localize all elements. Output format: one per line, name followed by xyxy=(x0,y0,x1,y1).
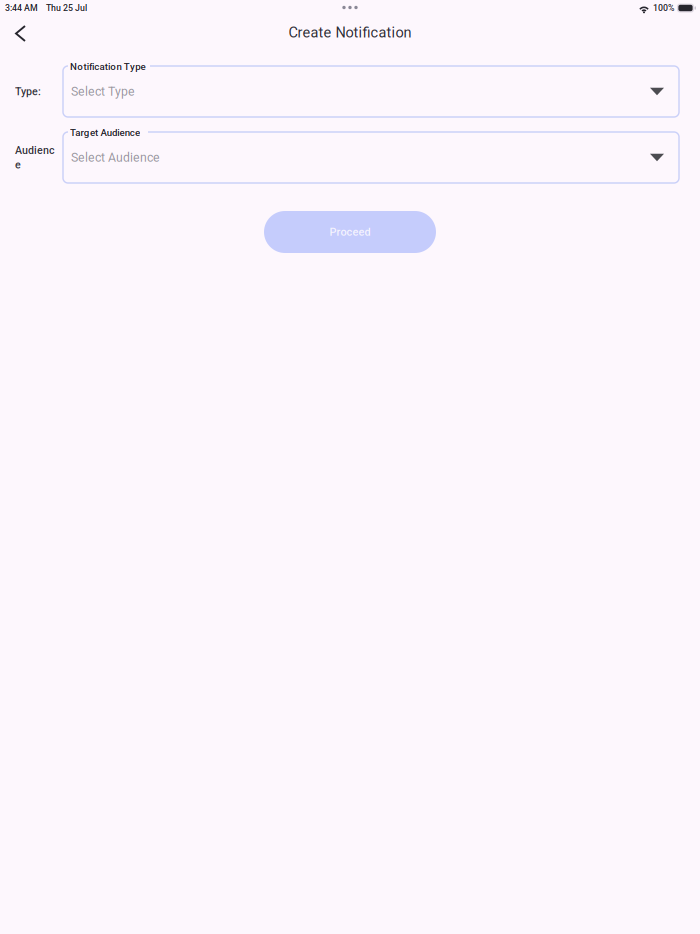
staticText: 100% xyxy=(653,3,674,13)
button[interactable]: Back xyxy=(0,16,38,49)
staticText: e xyxy=(15,158,21,171)
staticText: Notification Type xyxy=(70,61,145,72)
staticText: Target Audience xyxy=(70,127,140,138)
button[interactable]: Proceed xyxy=(264,211,436,253)
button[interactable]: Select Audience xyxy=(63,132,679,183)
staticText: Type: xyxy=(15,85,41,98)
staticText: Thu 25 Jul xyxy=(46,3,87,13)
staticText: Select Audience xyxy=(71,150,160,165)
staticText: Proceed xyxy=(329,226,370,238)
staticText: 3:44 AM xyxy=(5,3,38,13)
button[interactable]: Select Type xyxy=(63,66,679,117)
staticText: Audienc xyxy=(15,144,55,156)
staticText: Select Type xyxy=(71,84,135,99)
staticText: Create Notification xyxy=(288,24,411,41)
